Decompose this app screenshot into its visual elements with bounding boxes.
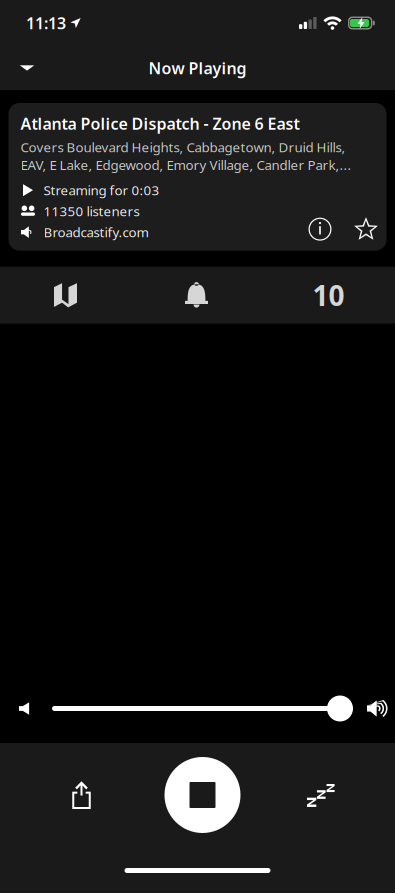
- button[interactable]: Collapse: [0, 46, 54, 90]
- button[interactable]: Information: [308, 218, 331, 241]
- button[interactable]: Stop: [163, 743, 242, 847]
- staticText: Atlanta Police Dispatch - Zone 6 East: [20, 113, 299, 134]
- button[interactable]: Favorite: [331, 217, 378, 242]
- staticText: Now Playing: [148, 57, 246, 79]
- button[interactable]: Map: [0, 267, 131, 324]
- staticText: Covers Boulevard Heights, Cabbagetown, D…: [20, 138, 351, 174]
- staticText: 11:13: [26, 12, 66, 34]
- button[interactable]: Sleep timer: [242, 743, 395, 847]
- staticText: 11350 listeners: [43, 202, 139, 220]
- staticText: Streaming for 0:03: [43, 181, 159, 199]
- staticText: 10: [312, 277, 344, 314]
- staticText: Broadcastify.com: [43, 223, 148, 241]
- button[interactable]: Alerts: [131, 267, 262, 324]
- button[interactable]: Share: [0, 743, 163, 847]
- button[interactable]: Ten codes: [262, 267, 395, 324]
